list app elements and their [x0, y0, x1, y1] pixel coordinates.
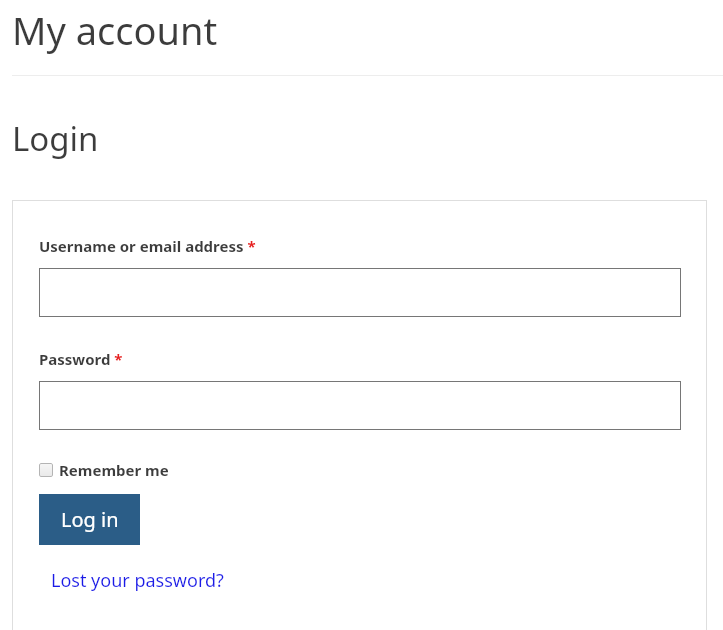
button[interactable]: Log in: [39, 494, 140, 545]
button[interactable]: [39, 381, 681, 430]
staticText: My account: [12, 4, 218, 56]
staticText: Username or email address *: [39, 236, 256, 256]
staticText: Log in: [61, 506, 119, 533]
staticText: Password *: [39, 349, 123, 369]
button[interactable]: Lost your password?: [51, 568, 224, 593]
button[interactable]: Remember me: [38, 458, 190, 484]
staticText: Lost your password?: [51, 568, 224, 593]
staticText: Login: [12, 116, 99, 161]
staticText: Remember me: [59, 460, 169, 480]
button[interactable]: [39, 268, 681, 317]
